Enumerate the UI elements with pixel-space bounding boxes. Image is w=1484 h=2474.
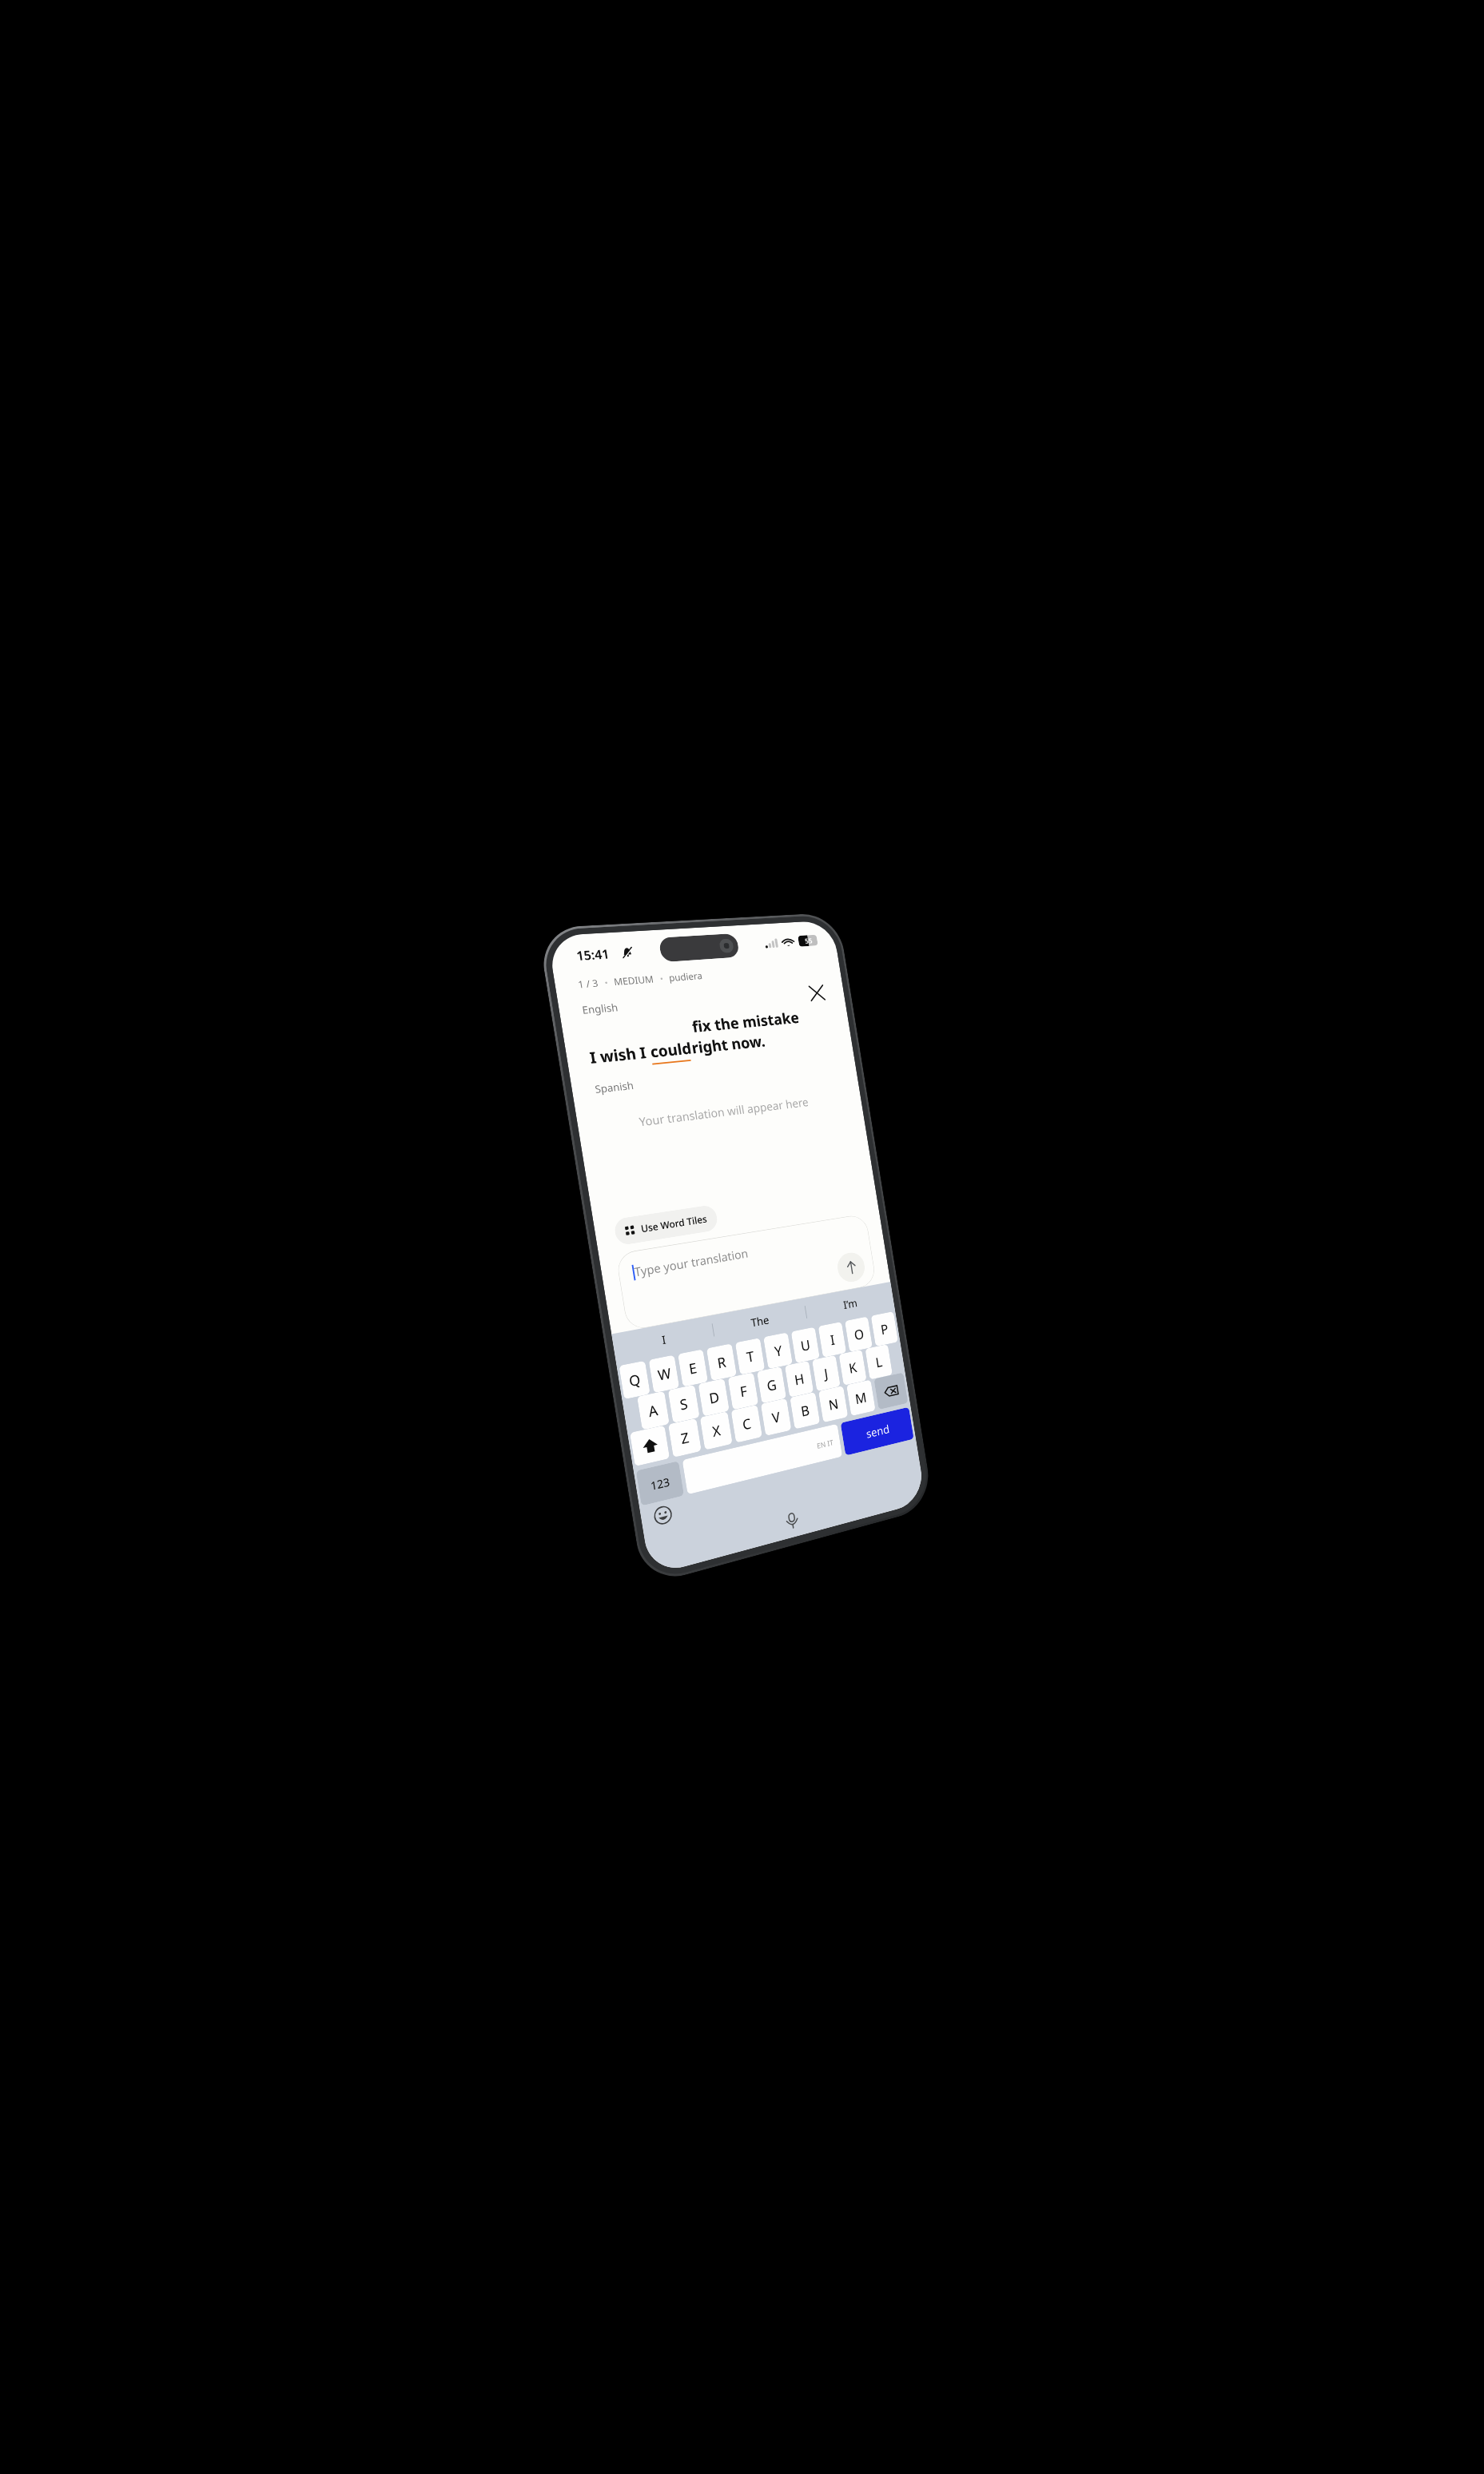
staticText: I (661, 1332, 668, 1347)
staticText: 123 (649, 1474, 671, 1493)
button[interactable]: K (839, 1350, 867, 1386)
button[interactable]: E (678, 1349, 708, 1387)
staticText: Type your translation (633, 1245, 750, 1280)
button[interactable]: C (731, 1405, 762, 1443)
staticText: W (656, 1363, 673, 1385)
staticText: I (829, 1330, 836, 1349)
staticText: I’m (842, 1295, 859, 1312)
staticText: V (771, 1407, 782, 1428)
button[interactable]: V (761, 1398, 792, 1436)
staticText: A (647, 1400, 660, 1421)
staticText: J (823, 1364, 830, 1383)
staticText: Your translation will appear here (600, 1090, 843, 1135)
staticText: I wish I (588, 1042, 652, 1069)
staticText: EN IT (816, 1437, 834, 1451)
button[interactable]: W (649, 1355, 679, 1393)
button[interactable]: S (668, 1385, 700, 1423)
button[interactable]: Z (668, 1418, 702, 1457)
staticText: could (649, 1038, 693, 1063)
staticText: L (874, 1353, 884, 1372)
button[interactable]: X (700, 1411, 733, 1450)
button[interactable]: J (812, 1355, 841, 1391)
staticText: Q (628, 1369, 642, 1391)
button[interactable]: D (698, 1378, 730, 1417)
staticText: S (678, 1394, 689, 1415)
staticText: English (581, 1000, 619, 1017)
button[interactable]: Voice input (779, 1505, 806, 1536)
button[interactable]: L (865, 1344, 893, 1380)
staticText: Spanish (594, 1078, 635, 1096)
button[interactable]: P (871, 1311, 898, 1347)
staticText: fix the mistake right now. (687, 1005, 833, 1059)
staticText: F (739, 1381, 749, 1401)
button[interactable]: F (728, 1372, 759, 1410)
staticText: M (854, 1388, 868, 1408)
button[interactable]: T (735, 1338, 765, 1375)
staticText: B (800, 1401, 811, 1421)
button[interactable]: 123 (636, 1461, 684, 1506)
staticText: 55 (799, 935, 818, 946)
button[interactable]: I (611, 1316, 715, 1364)
staticText: pudiera (668, 969, 704, 984)
staticText: G (765, 1375, 778, 1396)
button[interactable]: Submit translation (835, 1251, 867, 1284)
staticText: O (853, 1325, 865, 1344)
staticText: P (879, 1320, 890, 1339)
staticText: 15:41 (575, 945, 611, 964)
button[interactable]: O (845, 1316, 873, 1352)
button[interactable]: I’m (804, 1282, 895, 1326)
staticText: send (865, 1421, 891, 1442)
button[interactable]: Q (619, 1361, 650, 1399)
button[interactable]: A (637, 1391, 670, 1430)
button[interactable]: B (790, 1392, 820, 1429)
button[interactable]: Emoji (650, 1501, 676, 1529)
button[interactable]: R (706, 1343, 737, 1381)
staticText: T (745, 1347, 756, 1367)
staticText: X (711, 1421, 722, 1441)
staticText: Y (773, 1341, 784, 1361)
button[interactable]: Type your translation (615, 1214, 877, 1331)
button[interactable]: Y (763, 1332, 793, 1369)
button[interactable]: Shift (630, 1425, 670, 1466)
staticText: K (848, 1358, 858, 1378)
button[interactable]: N (818, 1386, 848, 1423)
button[interactable]: send (840, 1407, 914, 1456)
button[interactable]: The (711, 1298, 808, 1344)
staticText: D (708, 1387, 721, 1408)
button[interactable]: M (846, 1380, 876, 1416)
staticText: The (750, 1312, 771, 1330)
button[interactable]: Backspace (874, 1372, 908, 1410)
staticText: MEDIUM (613, 972, 655, 988)
button[interactable]: H (785, 1361, 814, 1398)
staticText: Z (679, 1428, 690, 1449)
staticText: N (827, 1394, 840, 1414)
button[interactable]: EN IT (682, 1424, 842, 1495)
button[interactable]: U (791, 1327, 820, 1363)
staticText: E (688, 1358, 699, 1379)
staticText: R (716, 1352, 727, 1373)
button[interactable]: Use Word Tiles (613, 1204, 719, 1246)
button[interactable]: G (757, 1366, 786, 1404)
staticText: C (741, 1414, 753, 1434)
staticText: Use Word Tiles (640, 1212, 708, 1235)
staticText: U (799, 1335, 812, 1356)
button[interactable]: I (818, 1322, 846, 1358)
button[interactable]: Close (800, 976, 833, 1009)
staticText: H (793, 1369, 806, 1390)
staticText: 1 / 3 (577, 976, 599, 991)
